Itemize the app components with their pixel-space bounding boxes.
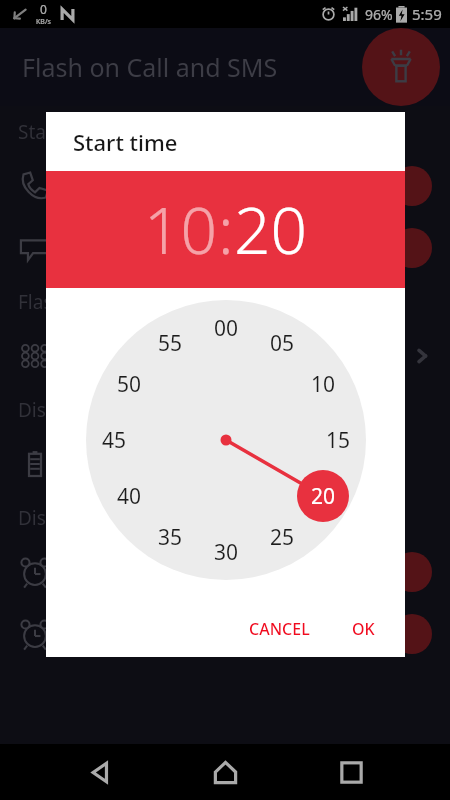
staticText: Disable schedule [18, 505, 169, 531]
button[interactable]: Flash on call [0, 155, 450, 217]
staticText: 10 [311, 370, 336, 399]
staticText: Battery level [72, 451, 189, 478]
button[interactable]: Recents [325, 746, 377, 798]
staticText: : [218, 186, 234, 273]
button[interactable]: 10 [144, 186, 218, 273]
staticText: 00 [214, 314, 239, 343]
staticText: KB/s [36, 17, 51, 27]
staticText: 55 [158, 329, 183, 358]
staticText: OK [352, 618, 375, 640]
staticText: Disable options [18, 397, 157, 423]
staticText: Start time [18, 119, 106, 145]
staticText: 15 [326, 426, 351, 455]
button[interactable]: 20 [234, 186, 308, 273]
button[interactable]: Battery level [0, 433, 450, 495]
staticText: Start time [73, 127, 178, 157]
staticText: 45 [102, 426, 127, 455]
staticText: 20 [311, 482, 336, 511]
button[interactable]: Flash pattern [0, 325, 450, 387]
button[interactable]: Start time [0, 541, 450, 603]
button[interactable]: CANCEL [239, 609, 320, 649]
staticText: 96% [365, 5, 393, 24]
button[interactable]: Toggle Flash on call [392, 166, 432, 206]
staticText: Flash pattern [72, 343, 196, 370]
staticText: 40 [117, 482, 142, 511]
staticText: Flash on Call and SMS [22, 50, 278, 84]
staticText: Flash on SMS [72, 235, 196, 262]
button[interactable]: Flashlight [362, 28, 440, 106]
staticText: CANCEL [249, 618, 310, 640]
staticText: 35 [158, 523, 183, 552]
staticText: 0 [40, 1, 47, 17]
staticText: 5:59 [412, 4, 442, 24]
button[interactable]: OK [342, 609, 385, 649]
staticText: Flash settings [18, 289, 141, 315]
button[interactable]: Stop time [0, 603, 450, 665]
button[interactable]: Back [74, 746, 126, 798]
button[interactable]: Home [199, 746, 251, 798]
button[interactable]: Minute dial [86, 300, 366, 580]
staticText: 25 [270, 523, 295, 552]
button[interactable]: Toggle Start time [392, 552, 432, 592]
button[interactable]: Toggle Flash on SMS [392, 228, 432, 268]
staticText: 30 [214, 538, 239, 567]
staticText: 05 [270, 329, 295, 358]
button[interactable]: Toggle Stop time [392, 614, 432, 654]
button[interactable]: Flash on SMS [0, 217, 450, 279]
staticText: 50 [117, 370, 142, 399]
staticText: 0:0 [353, 621, 382, 648]
